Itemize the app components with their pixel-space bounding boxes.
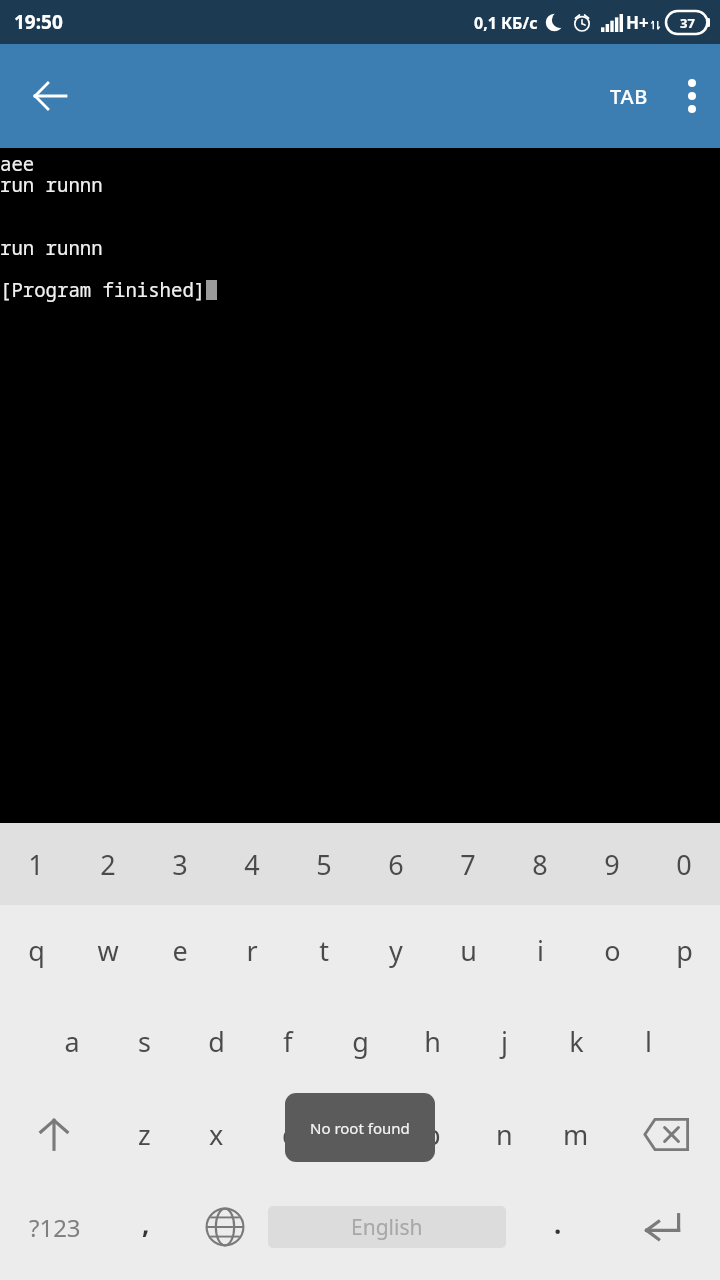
staticText: q bbox=[28, 932, 45, 969]
button[interactable]: x bbox=[180, 1087, 252, 1181]
button[interactable]: 7 bbox=[432, 823, 504, 905]
button[interactable]: w bbox=[72, 905, 144, 996]
staticText: x bbox=[209, 1116, 224, 1153]
button[interactable]: 8 bbox=[504, 823, 576, 905]
staticText: run runnn bbox=[0, 172, 103, 193]
button[interactable]: a bbox=[36, 996, 108, 1087]
staticText: 0 bbox=[676, 846, 692, 883]
button[interactable]: 2 bbox=[72, 823, 144, 905]
button[interactable]: m bbox=[540, 1087, 612, 1181]
staticText: 2 bbox=[100, 846, 116, 883]
button[interactable]: 0 bbox=[648, 823, 720, 905]
staticText: 1 bbox=[28, 846, 44, 883]
staticText: 5 bbox=[316, 846, 332, 883]
button[interactable]: s bbox=[108, 996, 180, 1087]
staticText: , bbox=[142, 1206, 150, 1241]
staticText: a bbox=[64, 1023, 80, 1060]
staticText: c bbox=[282, 1116, 295, 1153]
staticText: English bbox=[351, 1213, 423, 1242]
staticText: u bbox=[460, 932, 477, 969]
staticText: r bbox=[246, 932, 258, 969]
staticText: 8 bbox=[532, 846, 548, 883]
button[interactable]: ?123 bbox=[0, 1181, 110, 1273]
button[interactable]: l bbox=[612, 996, 684, 1087]
staticText: 6 bbox=[388, 846, 404, 883]
button[interactable]: Back bbox=[18, 64, 82, 128]
button[interactable]: Backspace bbox=[612, 1087, 720, 1181]
button[interactable]: c bbox=[252, 1087, 324, 1181]
button[interactable]: TAB bbox=[594, 44, 664, 148]
button[interactable]: y bbox=[360, 905, 432, 996]
button[interactable]: p bbox=[648, 905, 720, 996]
staticText: 7 bbox=[460, 846, 476, 883]
staticText: aee bbox=[0, 151, 35, 172]
staticText: 3 bbox=[172, 846, 188, 883]
staticText: j bbox=[501, 1023, 508, 1060]
staticText: . bbox=[554, 1206, 562, 1241]
button[interactable]: Enter bbox=[610, 1181, 720, 1273]
staticText: b bbox=[424, 1116, 441, 1153]
button[interactable]: h bbox=[396, 996, 468, 1087]
button[interactable]: 1 bbox=[0, 823, 72, 905]
staticText: e bbox=[172, 932, 188, 969]
button[interactable]: o bbox=[576, 905, 648, 996]
button[interactable]: u bbox=[432, 905, 504, 996]
staticText: ?123 bbox=[29, 1211, 81, 1244]
button[interactable]: English bbox=[268, 1181, 506, 1273]
button[interactable]: t bbox=[288, 905, 360, 996]
button[interactable]: More options bbox=[664, 44, 720, 148]
button[interactable]: 3 bbox=[144, 823, 216, 905]
staticText: l bbox=[645, 1023, 652, 1060]
button[interactable]: 9 bbox=[576, 823, 648, 905]
staticText: i bbox=[537, 932, 544, 969]
button[interactable]: k bbox=[540, 996, 612, 1087]
staticText: 0,1 КБ/с bbox=[474, 12, 538, 34]
button[interactable]: b bbox=[396, 1087, 468, 1181]
staticText: n bbox=[496, 1116, 513, 1153]
staticText: 9 bbox=[604, 846, 620, 883]
staticText: No root found bbox=[310, 1118, 410, 1138]
button[interactable]: 6 bbox=[360, 823, 432, 905]
staticText: g bbox=[352, 1023, 369, 1060]
button[interactable]: i bbox=[504, 905, 576, 996]
staticText: [Program finished] bbox=[0, 277, 206, 303]
button[interactable]: d bbox=[180, 996, 252, 1087]
staticText: TAB bbox=[610, 83, 648, 110]
staticText: w bbox=[97, 932, 119, 969]
button[interactable]: f bbox=[252, 996, 324, 1087]
staticText: o bbox=[604, 932, 621, 969]
staticText: 37 bbox=[680, 14, 695, 32]
staticText: m bbox=[563, 1116, 589, 1153]
staticText: H+ bbox=[626, 11, 649, 34]
staticText: 4 bbox=[244, 846, 260, 883]
staticText: 19:50 bbox=[14, 9, 63, 35]
staticText: z bbox=[138, 1116, 151, 1153]
staticText: h bbox=[424, 1023, 441, 1060]
staticText: t bbox=[319, 932, 329, 969]
staticText: d bbox=[208, 1023, 225, 1060]
button[interactable]: z bbox=[108, 1087, 180, 1181]
staticText: y bbox=[389, 932, 403, 969]
button[interactable]: Shift bbox=[0, 1087, 108, 1181]
button[interactable]: g bbox=[324, 996, 396, 1087]
button[interactable]: q bbox=[0, 905, 72, 996]
button[interactable]: e bbox=[144, 905, 216, 996]
button[interactable]: , bbox=[110, 1181, 182, 1273]
button[interactable]: 5 bbox=[288, 823, 360, 905]
button[interactable]: v bbox=[324, 1087, 396, 1181]
staticText: s bbox=[138, 1023, 151, 1060]
staticText: v bbox=[353, 1116, 367, 1153]
button[interactable]: j bbox=[468, 996, 540, 1087]
staticText: p bbox=[676, 932, 693, 969]
staticText: run runnn bbox=[0, 235, 103, 256]
staticText: k bbox=[569, 1023, 584, 1060]
button[interactable]: Change language bbox=[182, 1181, 268, 1273]
staticText: f bbox=[283, 1023, 293, 1060]
button[interactable]: 4 bbox=[216, 823, 288, 905]
button[interactable]: . bbox=[506, 1181, 610, 1273]
button[interactable]: r bbox=[216, 905, 288, 996]
button[interactable]: n bbox=[468, 1087, 540, 1181]
